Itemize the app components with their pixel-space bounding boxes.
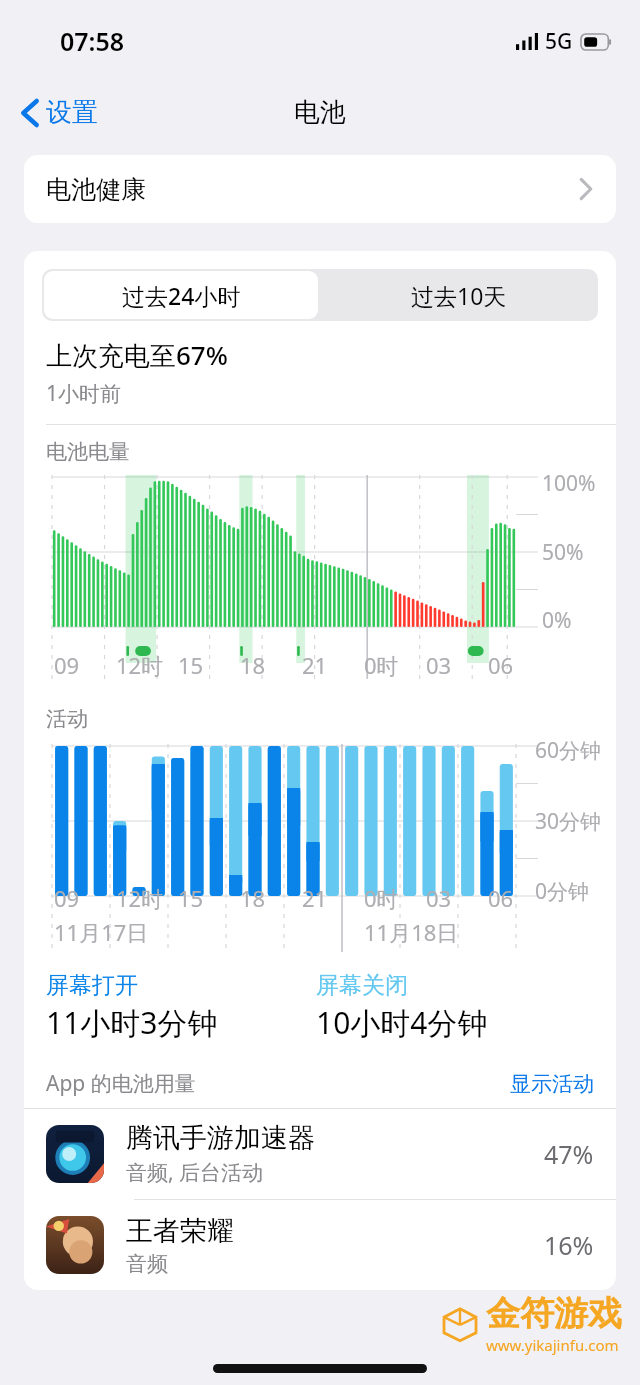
staticText: 上次充电至67%: [46, 337, 228, 373]
staticText: 0分钟: [535, 877, 590, 906]
staticText: 06: [488, 883, 514, 913]
staticText: 12时: [116, 650, 164, 680]
button[interactable]: 腾讯手游加速器: [24, 1109, 616, 1199]
staticText: 03: [426, 650, 452, 680]
staticText: 18: [240, 650, 266, 680]
staticText: 06: [488, 650, 514, 680]
staticText: 屏幕关闭: [316, 971, 408, 1000]
staticText: 过去10天: [411, 280, 507, 311]
staticText: 07:58: [60, 24, 125, 58]
staticText: 电池: [294, 96, 346, 129]
staticText: 60分钟: [535, 736, 602, 765]
staticText: App 的电池用量: [46, 1069, 196, 1098]
staticText: 11月18日: [364, 917, 459, 947]
staticText: 18: [240, 883, 266, 913]
staticText: 12时: [116, 883, 164, 913]
staticText: 21: [302, 650, 328, 680]
staticText: 0%: [542, 606, 572, 635]
button[interactable]: 王者荣耀: [24, 1200, 616, 1290]
staticText: 5G: [545, 27, 573, 56]
staticText: 王者荣耀: [126, 1214, 234, 1248]
button[interactable]: 显示活动: [510, 1071, 594, 1097]
staticText: 47%: [544, 1137, 594, 1171]
staticText: 11月17日: [54, 917, 149, 947]
staticText: 10小时4分钟: [316, 1002, 488, 1043]
staticText: 16%: [544, 1228, 594, 1262]
staticText: 100%: [542, 469, 596, 498]
staticText: 0时: [364, 650, 399, 680]
staticText: 设置: [46, 96, 98, 129]
button[interactable]: 设置: [16, 90, 104, 135]
button[interactable]: 过去10天: [320, 269, 598, 321]
staticText: 电池健康: [46, 174, 146, 205]
staticText: 15: [178, 883, 204, 913]
staticText: 09: [54, 650, 80, 680]
staticText: 过去24小时: [122, 280, 241, 311]
button[interactable]: 过去24小时: [44, 271, 318, 319]
staticText: 屏幕打开: [46, 971, 138, 1000]
staticText: 21: [302, 883, 328, 913]
button[interactable]: 电池健康: [24, 155, 616, 223]
staticText: 0时: [364, 883, 399, 913]
staticText: 音频: [126, 1251, 168, 1277]
staticText: 腾讯手游加速器: [126, 1121, 315, 1155]
staticText: 音频, 后台活动: [126, 1158, 264, 1187]
staticText: 15: [178, 650, 204, 680]
staticText: 03: [426, 883, 452, 913]
staticText: 电池电量: [46, 439, 130, 465]
staticText: www.yikajinfu.com: [486, 1335, 619, 1355]
staticText: 50%: [542, 538, 584, 567]
staticText: 1小时前: [46, 379, 122, 408]
staticText: 30分钟: [535, 807, 602, 836]
staticText: 11小时3分钟: [46, 1002, 218, 1043]
staticText: 显示活动: [510, 1071, 594, 1097]
staticText: 活动: [46, 706, 88, 732]
staticText: 金符游戏: [486, 1292, 622, 1335]
staticText: 09: [54, 883, 80, 913]
